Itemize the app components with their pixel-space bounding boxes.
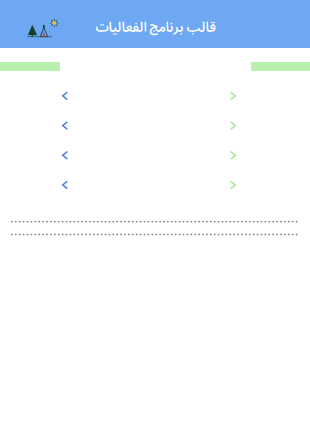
button[interactable]: Camping bbox=[0, 7, 61, 41]
button[interactable]: Previous bbox=[60, 81, 70, 111]
button[interactable]: Previous bbox=[60, 140, 70, 170]
button[interactable]: Previous bbox=[60, 111, 70, 140]
button[interactable]: Next bbox=[228, 140, 238, 170]
button[interactable]: Next bbox=[228, 81, 238, 111]
button[interactable]: Previous bbox=[60, 170, 70, 200]
button[interactable]: Next bbox=[228, 170, 238, 200]
button[interactable]: Next bbox=[228, 111, 238, 140]
staticText: قالب برنامج الفعاليات bbox=[95, 17, 215, 36]
